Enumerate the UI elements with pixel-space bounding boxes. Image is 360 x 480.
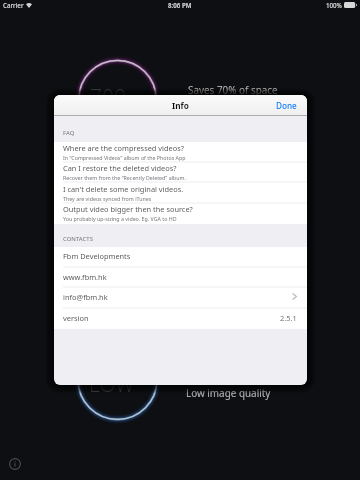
button[interactable]: Done: [266, 97, 307, 114]
button[interactable]: Output video bigger then the source?: [54, 202, 307, 223]
staticText: They are videos synced from iTunes: [63, 195, 152, 202]
staticText: Where are the compressed videos?: [63, 143, 184, 153]
staticText: Info: [172, 100, 189, 111]
staticText: Recover them from the “Recently Deleted”…: [63, 174, 186, 181]
button[interactable]: Info: [4, 453, 26, 475]
staticText: 100%: [326, 1, 342, 9]
staticText: www.fbm.hk: [63, 272, 107, 282]
staticText: You probably up-sizing a video. Eg. VGA …: [63, 215, 177, 222]
staticText: Low image quality: [186, 386, 271, 399]
staticText: version: [63, 313, 89, 323]
staticText: LOW: [89, 370, 135, 399]
staticText: Saves 70% of space: [188, 83, 278, 96]
staticText: Can I restore the deleted videos?: [63, 163, 177, 173]
button[interactable]: I can't delete some original videos.: [54, 182, 307, 203]
staticText: In “Compressed Videos” album of the Phot…: [63, 154, 186, 161]
staticText: info@fbm.hk: [63, 292, 108, 302]
staticText: 2.5.1: [280, 313, 297, 323]
staticText: Done: [276, 100, 297, 111]
staticText: Fbm Developments: [63, 251, 131, 261]
button[interactable]: version: [54, 307, 307, 328]
staticText: CONTACTS: [63, 235, 93, 243]
button[interactable]: Can I restore the deleted videos?: [54, 161, 307, 182]
staticText: 700: [90, 83, 126, 112]
button[interactable]: info@fbm.hk: [54, 286, 307, 307]
staticText: I can't delete some original videos.: [63, 184, 184, 194]
staticText: Carrier: [3, 1, 24, 9]
button[interactable]: Where are the compressed videos?: [54, 141, 307, 162]
button[interactable]: Fbm Developments: [54, 245, 307, 266]
staticText: 8:06 PM: [168, 1, 192, 9]
button[interactable]: www.fbm.hk: [54, 266, 307, 287]
staticText: Output video bigger then the source?: [63, 204, 193, 214]
staticText: FAQ: [63, 129, 75, 137]
